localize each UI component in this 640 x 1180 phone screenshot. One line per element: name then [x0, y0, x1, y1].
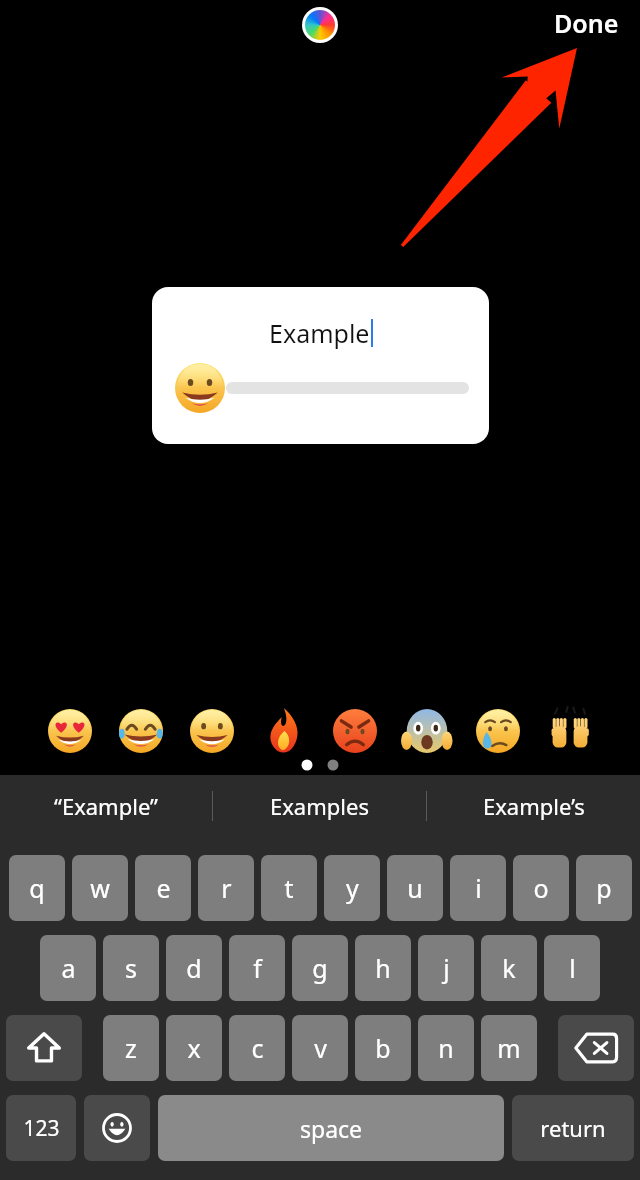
staticText: p — [596, 871, 612, 905]
staticText: n — [438, 1031, 454, 1065]
button[interactable]: p — [576, 855, 632, 921]
button[interactable]: Shift — [6, 1015, 82, 1081]
button[interactable]: “Example” — [0, 775, 212, 837]
staticText: “Example” — [54, 791, 158, 821]
button[interactable]: c — [229, 1015, 285, 1081]
button[interactable]: t — [261, 855, 317, 921]
staticText: m — [497, 1031, 521, 1065]
staticText: j — [443, 951, 450, 985]
staticText: 123 — [23, 1114, 60, 1143]
staticText: l — [569, 951, 576, 985]
staticText: w — [90, 871, 110, 905]
button[interactable]: z — [103, 1015, 159, 1081]
button[interactable]: 123 — [6, 1095, 76, 1161]
button[interactable]: o — [513, 855, 569, 921]
button[interactable]: x — [166, 1015, 222, 1081]
staticText: space — [300, 1113, 363, 1144]
button[interactable]: h — [355, 935, 411, 1001]
button[interactable]: g — [292, 935, 348, 1001]
button[interactable]: Backspace — [558, 1015, 634, 1081]
staticText: Examples — [270, 791, 369, 821]
button[interactable]: b — [355, 1015, 411, 1081]
staticText: e — [156, 871, 171, 905]
staticText: v — [314, 1031, 327, 1065]
staticText: i — [475, 871, 482, 905]
button[interactable]: Example’s — [427, 775, 640, 837]
staticText: o — [533, 871, 549, 905]
staticText: y — [346, 871, 359, 905]
button[interactable]: j — [418, 935, 474, 1001]
staticText: return — [540, 1113, 606, 1143]
button[interactable]: k — [481, 935, 537, 1001]
staticText: Example — [269, 316, 370, 350]
button[interactable]: a — [40, 935, 96, 1001]
button[interactable]: s — [103, 935, 159, 1001]
button[interactable]: l — [544, 935, 600, 1001]
button[interactable]: q — [9, 855, 65, 921]
button[interactable]: y — [324, 855, 380, 921]
staticText: c — [251, 1031, 264, 1065]
staticText: f — [253, 951, 262, 985]
button[interactable]: Example — [152, 287, 489, 444]
staticText: r — [221, 871, 232, 905]
button[interactable]: Done — [548, 2, 625, 44]
button[interactable]: f — [229, 935, 285, 1001]
staticText: x — [187, 1031, 201, 1065]
staticText: s — [125, 951, 137, 985]
staticText: h — [375, 951, 391, 985]
button[interactable]: r — [198, 855, 254, 921]
button[interactable]: u — [387, 855, 443, 921]
staticText: g — [312, 951, 328, 985]
button[interactable]: w — [72, 855, 128, 921]
button[interactable]: n — [418, 1015, 474, 1081]
button[interactable]: i — [450, 855, 506, 921]
staticText: a — [61, 951, 76, 985]
button[interactable]: Emoji keyboard — [84, 1095, 150, 1161]
staticText: u — [407, 871, 423, 905]
staticText: t — [284, 871, 294, 905]
staticText: Done — [554, 6, 619, 40]
staticText: k — [502, 951, 516, 985]
staticText: z — [125, 1031, 137, 1065]
button[interactable]: d — [166, 935, 222, 1001]
button[interactable]: Color picker — [302, 7, 338, 43]
staticText: Example’s — [483, 791, 585, 821]
staticText: q — [29, 871, 45, 905]
staticText: b — [375, 1031, 391, 1065]
button[interactable]: return — [512, 1095, 634, 1161]
button[interactable]: v — [292, 1015, 348, 1081]
button[interactable]: Examples — [213, 775, 426, 837]
button[interactable]: e — [135, 855, 191, 921]
button[interactable]: m — [481, 1015, 537, 1081]
staticText: d — [186, 951, 202, 985]
button[interactable] — [174, 365, 469, 411]
button[interactable]: space — [158, 1095, 504, 1161]
